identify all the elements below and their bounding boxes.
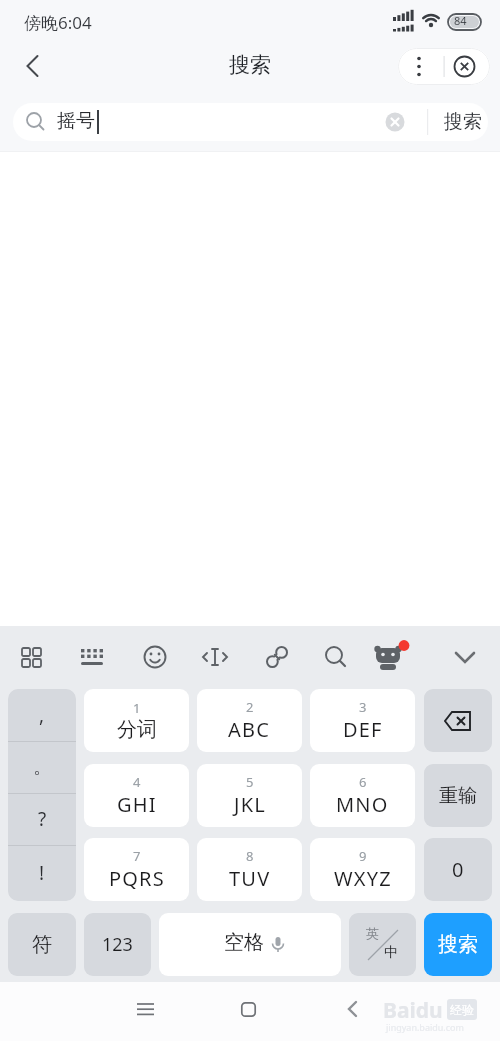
staticText: GHI — [117, 791, 157, 818]
button[interactable] — [226, 987, 270, 1031]
staticText: 6 — [359, 773, 367, 791]
button[interactable]: 搜索 — [424, 913, 492, 976]
staticText: 9 — [359, 847, 367, 865]
button[interactable]: 2 — [197, 689, 302, 752]
staticText: 1 — [133, 699, 141, 717]
staticText: 搜索 — [444, 110, 482, 134]
staticText: 8 — [246, 847, 254, 865]
button[interactable] — [123, 987, 167, 1031]
staticText: DEF — [343, 716, 383, 743]
staticText: 123 — [102, 932, 133, 957]
button[interactable] — [443, 635, 487, 679]
button[interactable] — [12, 46, 52, 86]
button[interactable]: 8 — [197, 838, 302, 901]
staticText: 分词 — [117, 717, 157, 742]
button[interactable]: 搜索 — [438, 103, 488, 141]
staticText: 3 — [359, 698, 367, 716]
button[interactable] — [444, 48, 490, 85]
button[interactable]: 空格 — [159, 913, 341, 976]
button[interactable]: 符 — [8, 913, 76, 976]
button[interactable]: 重输 — [424, 764, 492, 827]
staticText: PQRS — [109, 865, 165, 892]
button[interactable] — [314, 635, 358, 679]
button[interactable]: 3 — [310, 689, 415, 752]
staticText: JKL — [234, 791, 266, 818]
staticText: MNO — [336, 791, 389, 818]
staticText: ABC — [228, 716, 271, 743]
button[interactable]: 123 — [84, 913, 151, 976]
button[interactable] — [330, 987, 374, 1031]
button[interactable]: 7 — [84, 838, 189, 901]
staticText: 中 — [384, 944, 398, 962]
staticText: 经验 — [450, 1002, 474, 1017]
button[interactable] — [10, 635, 54, 679]
staticText: Baidu — [383, 996, 443, 1025]
staticText: ? — [38, 806, 47, 832]
button[interactable]: 6 — [310, 764, 415, 827]
button[interactable]: 4 — [84, 764, 189, 827]
button[interactable]: 。 — [8, 741, 76, 793]
button[interactable] — [255, 635, 299, 679]
staticText: 重输 — [439, 784, 477, 808]
staticText: 傍晚6:04 — [24, 11, 92, 34]
staticText: ! — [39, 860, 45, 886]
staticText: 84 — [454, 13, 467, 28]
button[interactable] — [193, 635, 237, 679]
staticText: WXYZ — [334, 865, 392, 892]
button[interactable]: , — [8, 689, 76, 741]
button[interactable] — [133, 635, 177, 679]
staticText: jingyan.baidu.com — [386, 1021, 464, 1033]
button[interactable]: ? — [8, 793, 76, 845]
button[interactable] — [366, 635, 410, 679]
button[interactable]: 0 — [424, 838, 492, 901]
button[interactable]: 1 — [84, 689, 189, 752]
staticText: 0 — [452, 856, 464, 883]
button[interactable] — [398, 48, 444, 85]
staticText: 7 — [133, 847, 141, 865]
staticText: TUV — [229, 865, 271, 892]
button[interactable]: ! — [8, 847, 76, 899]
button[interactable]: 摇号 — [13, 103, 488, 141]
staticText: 搜索 — [0, 52, 500, 78]
staticText: 摇号 — [57, 109, 95, 133]
button[interactable]: 英 — [349, 913, 416, 976]
staticText: , — [39, 702, 45, 728]
button[interactable]: 9 — [310, 838, 415, 901]
staticText: 符 — [32, 932, 52, 957]
button[interactable] — [71, 635, 115, 679]
staticText: 2 — [246, 698, 254, 716]
staticText: 搜索 — [438, 932, 478, 957]
staticText: 空格 — [224, 930, 264, 955]
button[interactable]: 5 — [197, 764, 302, 827]
staticText: 英 — [366, 925, 379, 941]
staticText: 5 — [246, 773, 254, 791]
button[interactable] — [424, 689, 492, 752]
staticText: 。 — [33, 755, 52, 779]
staticText: 4 — [133, 773, 141, 791]
